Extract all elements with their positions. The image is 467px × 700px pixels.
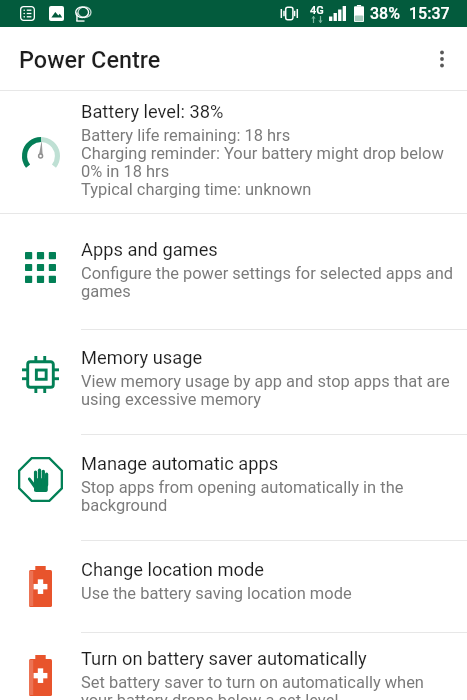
- button[interactable]: Manage automatic apps: [0, 435, 467, 540]
- staticText: Battery level: 38%: [81, 101, 224, 122]
- button[interactable]: Apps and games: [0, 214, 467, 329]
- button[interactable]: Change location mode: [0, 541, 467, 632]
- staticText: 15:37: [409, 4, 450, 23]
- staticText: Use the battery saving location mode: [81, 584, 352, 603]
- button[interactable]: Memory usage: [0, 330, 467, 434]
- staticText: Set battery saver to turn on automatical…: [81, 673, 459, 700]
- staticText: Battery life remaining: 18 hrs Charging …: [81, 126, 459, 199]
- staticText: Configure the power settings for selecte…: [81, 264, 459, 301]
- staticText: Apps and games: [81, 239, 218, 260]
- button[interactable]: More options: [418, 35, 466, 83]
- staticText: Power Centre: [19, 46, 161, 73]
- button[interactable]: Battery level: 38%: [0, 91, 467, 213]
- staticText: Manage automatic apps: [81, 453, 279, 474]
- staticText: Change location mode: [81, 559, 264, 580]
- staticText: Memory usage: [81, 347, 203, 368]
- staticText: View memory usage by app and stop apps t…: [81, 372, 459, 409]
- staticText: Turn on battery saver automatically: [81, 648, 367, 669]
- staticText: 38%: [370, 4, 400, 23]
- staticText: 4G: [310, 4, 324, 17]
- staticText: Stop apps from opening automatically in …: [81, 478, 459, 515]
- button[interactable]: Turn on battery saver automatically: [0, 633, 467, 700]
